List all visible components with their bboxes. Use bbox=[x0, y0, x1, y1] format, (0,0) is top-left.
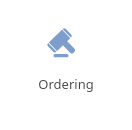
button[interactable]: Ordering bbox=[0, 0, 132, 130]
staticText: Ordering bbox=[38, 75, 94, 93]
other: Ordering bbox=[0, 0, 132, 130]
